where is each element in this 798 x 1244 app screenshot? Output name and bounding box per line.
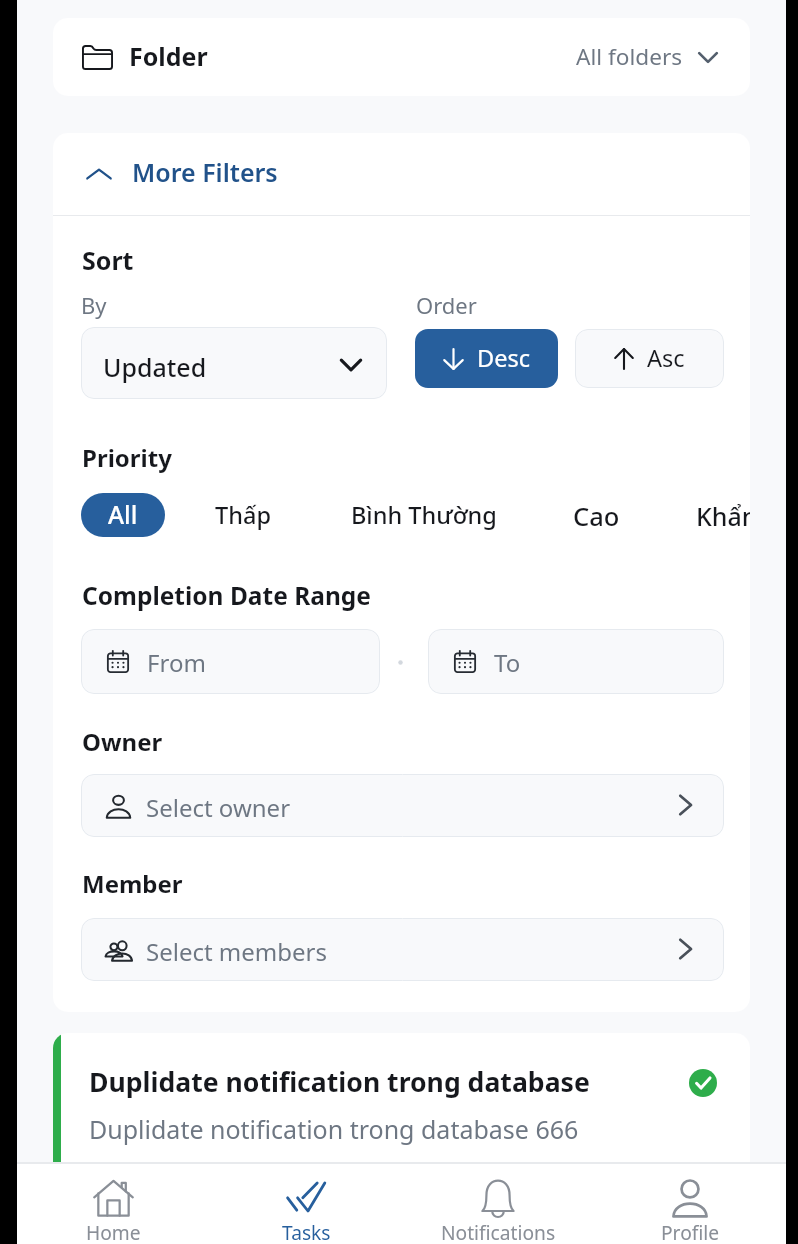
staticText: Sort <box>82 243 134 277</box>
button[interactable]: All <box>81 493 165 537</box>
button[interactable]: Desc <box>415 329 558 388</box>
staticText: Notifications <box>441 1219 556 1244</box>
staticText: More Filters <box>132 155 278 189</box>
button[interactable]: Select members <box>81 918 724 981</box>
staticText: Select members <box>146 935 327 968</box>
staticText: Completion Date Range <box>82 579 371 612</box>
staticText: Order <box>416 290 477 320</box>
button[interactable]: Cao <box>573 499 620 534</box>
button[interactable]: Updated <box>81 327 387 399</box>
staticText: Home <box>86 1219 141 1244</box>
button[interactable]: Asc <box>575 329 724 388</box>
staticText: Member <box>82 867 183 900</box>
staticText: Duplidate notification trong database <box>89 1064 590 1100</box>
staticText: All <box>108 498 138 531</box>
staticText: All folders <box>576 41 683 72</box>
button[interactable]: Home <box>17 1164 210 1244</box>
button[interactable]: More Filters <box>53 133 750 215</box>
staticText: Asc <box>647 342 685 374</box>
button[interactable]: Folder <box>53 18 750 96</box>
staticText: Select owner <box>146 791 291 824</box>
staticText: Folder <box>129 39 208 73</box>
button[interactable]: To <box>428 629 724 694</box>
staticText: Desc <box>477 342 530 374</box>
staticText: By <box>81 290 107 320</box>
staticText: Duplidate notification trong database 66… <box>89 1112 579 1146</box>
staticText: Profile <box>661 1219 720 1244</box>
staticText: Tasks <box>282 1219 331 1244</box>
button[interactable]: Khẩn <box>696 499 750 533</box>
button[interactable]: Tasks <box>210 1164 402 1244</box>
button[interactable]: Notifications <box>402 1164 594 1244</box>
staticText: Priority <box>82 441 172 474</box>
staticText: Owner <box>82 725 163 758</box>
staticText: Updated <box>103 350 207 384</box>
button[interactable]: Select owner <box>81 774 724 837</box>
staticText: From <box>147 646 206 679</box>
button[interactable]: From <box>81 629 380 694</box>
button[interactable]: Thấp <box>215 499 271 531</box>
button[interactable]: Profile <box>594 1164 786 1244</box>
button[interactable]: Duplidate notification trong database <box>53 1033 750 1193</box>
button[interactable]: Bình Thường <box>351 499 497 531</box>
staticText: To <box>494 646 521 679</box>
